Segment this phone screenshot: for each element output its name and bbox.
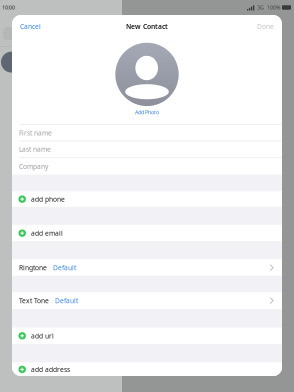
staticText: Default	[53, 263, 76, 272]
button[interactable]: add url	[12, 328, 282, 344]
staticText: First name	[19, 128, 52, 137]
staticText: Done	[257, 22, 274, 31]
button[interactable]: Ringtone	[12, 259, 282, 276]
staticText: 3G	[257, 4, 264, 11]
staticText: 100%	[267, 4, 280, 11]
staticText: Add Photo	[135, 109, 159, 116]
staticText: 10:00	[2, 4, 15, 11]
staticText: add url	[31, 331, 54, 340]
staticText: Ringtone	[19, 263, 47, 272]
staticText: Company	[19, 162, 48, 171]
staticText: Cancel	[20, 22, 41, 31]
staticText: Default	[55, 296, 78, 305]
button[interactable]: Done	[249, 15, 282, 38]
button[interactable]: Cancel	[12, 15, 49, 38]
button[interactable]: add phone	[12, 191, 282, 207]
staticText: Last name	[19, 145, 51, 154]
button[interactable]: Text Tone	[12, 292, 282, 309]
staticText: New Contact	[126, 22, 168, 31]
staticText: add phone	[31, 195, 65, 204]
button[interactable]: Add Photo	[135, 106, 159, 116]
staticText: add email	[31, 229, 63, 238]
button[interactable]: add email	[12, 225, 282, 241]
button[interactable]: add address	[12, 362, 282, 376]
staticText: Text Tone	[19, 296, 49, 305]
staticText: add address	[31, 365, 70, 374]
